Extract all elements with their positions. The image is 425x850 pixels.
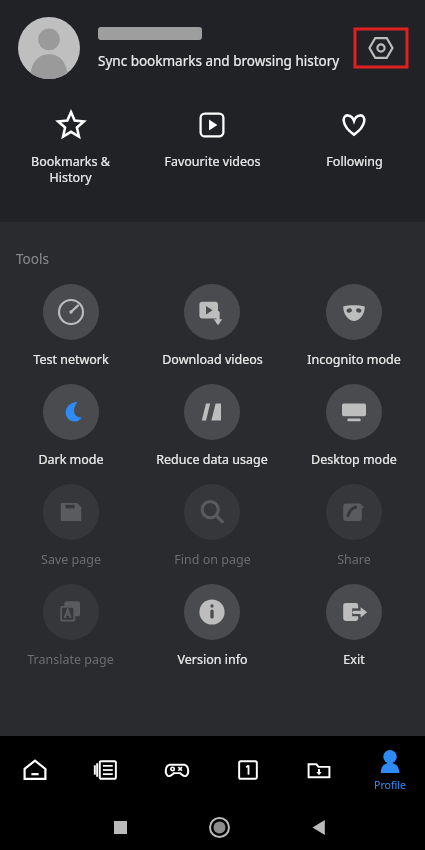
button[interactable]: Find on page: [141, 484, 283, 568]
button[interactable]: Download videos: [141, 284, 283, 368]
button[interactable]: News: [70, 736, 141, 804]
staticText: Find on page: [174, 551, 251, 568]
staticText: Version info: [177, 651, 248, 668]
staticText: Download videos: [162, 351, 263, 368]
button[interactable]: Save page: [0, 484, 141, 568]
button[interactable]: Dark mode: [0, 384, 141, 468]
button[interactable]: Reduce data usage: [141, 384, 283, 468]
staticText: Test network: [33, 351, 109, 368]
button[interactable]: Exit: [283, 584, 425, 668]
button[interactable]: Share: [283, 484, 425, 568]
staticText: Sync bookmarks and browsing history: [98, 52, 340, 70]
button[interactable]: Back: [269, 804, 368, 850]
staticText: Tools: [16, 250, 49, 268]
button[interactable]: Following: [283, 96, 425, 170]
staticText: Exit: [343, 651, 365, 668]
staticText: Share: [337, 551, 371, 568]
button[interactable]: Tabs: [212, 736, 283, 804]
staticText: Profile: [374, 778, 406, 792]
button[interactable]: Games: [141, 736, 212, 804]
button[interactable]: Home: [170, 804, 269, 850]
staticText: Dark mode: [38, 451, 104, 468]
staticText: Incognito mode: [307, 351, 401, 368]
button[interactable]: Profile: [354, 749, 425, 792]
button[interactable]: Translate page: [0, 584, 141, 668]
staticText: Desktop mode: [311, 451, 397, 468]
button[interactable]: Home: [0, 736, 70, 804]
button[interactable]: Favourite videos: [141, 96, 283, 170]
staticText: Following: [326, 153, 383, 170]
button[interactable]: Version info: [141, 584, 283, 668]
staticText: Translate page: [27, 651, 114, 668]
staticText: Bookmarks & History: [31, 153, 110, 186]
button[interactable]: Settings: [355, 29, 407, 67]
staticText: Favourite videos: [164, 153, 261, 170]
button[interactable]: Bookmarks & History: [0, 96, 141, 186]
button[interactable]: Recents: [71, 804, 170, 850]
staticText: Reduce data usage: [156, 451, 268, 468]
button[interactable]: Profile photo: [18, 17, 80, 79]
button[interactable]: Downloads: [283, 736, 354, 804]
staticText: Save page: [41, 551, 101, 568]
button[interactable]: Incognito mode: [283, 284, 425, 368]
button[interactable]: Desktop mode: [283, 384, 425, 468]
button[interactable]: Test network: [0, 284, 141, 368]
